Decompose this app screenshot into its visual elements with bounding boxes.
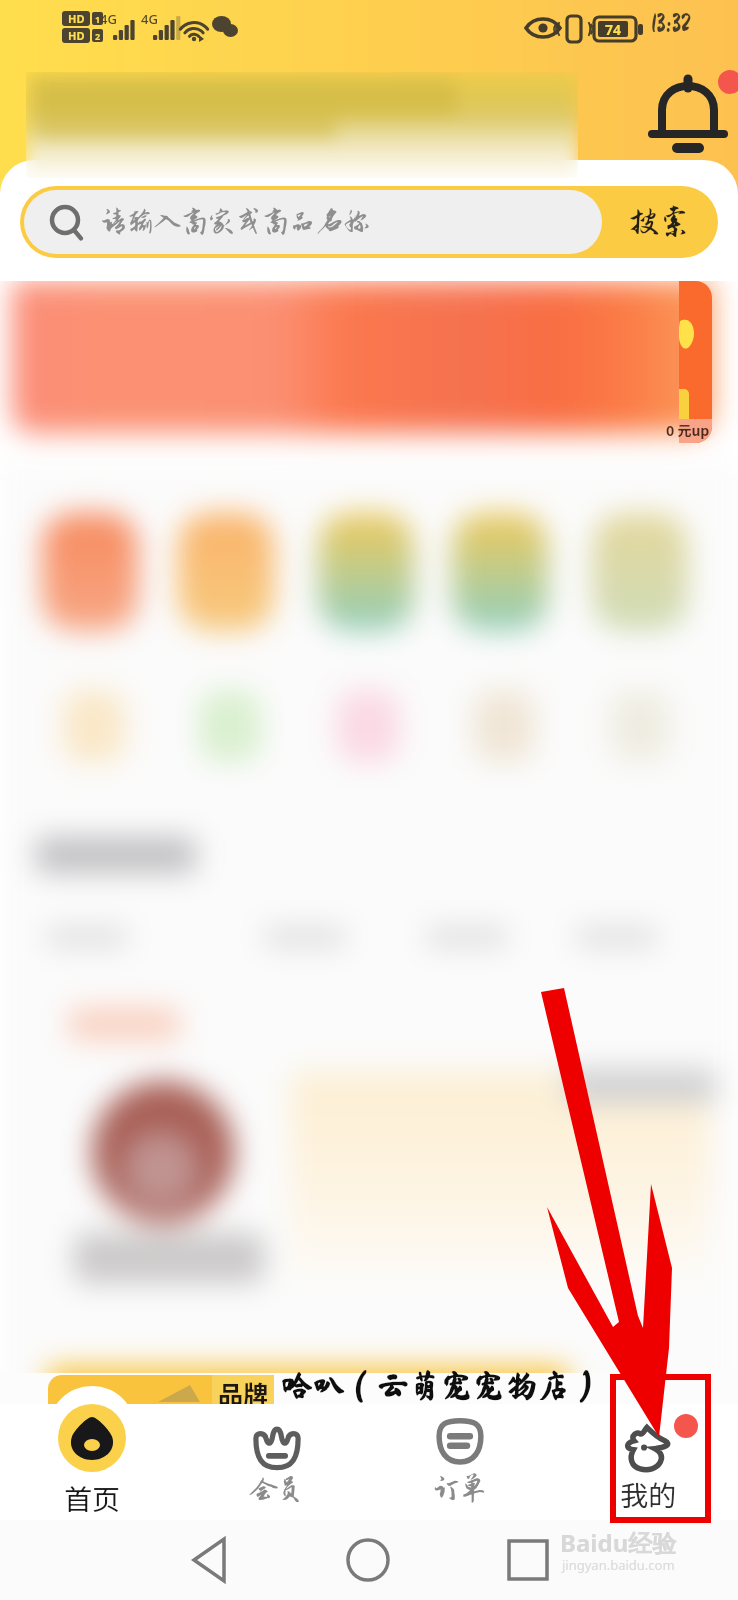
staticText: 请输入商家或商品名称 [100, 207, 370, 237]
staticText: 我的 [620, 1474, 677, 1515]
staticText: 1 [95, 13, 101, 25]
button[interactable] [63, 690, 125, 762]
button[interactable] [609, 690, 671, 762]
button[interactable] [318, 513, 414, 631]
button[interactable] [0, 1404, 738, 1520]
staticText: 首页 [64, 1478, 121, 1519]
button[interactable] [473, 690, 535, 762]
staticText: 会员 [250, 1475, 304, 1505]
button[interactable]: 会员 [215, 1404, 339, 1520]
staticText: 订单 [433, 1474, 487, 1504]
staticText: 0 元up [666, 420, 710, 440]
button[interactable] [337, 690, 399, 762]
button[interactable]: 订单 [398, 1404, 522, 1520]
staticText: HD [68, 11, 85, 26]
staticText: HD [68, 28, 85, 43]
staticText: 74 [605, 20, 622, 39]
button[interactable] [42, 513, 138, 631]
button[interactable]: 首页 [30, 1404, 154, 1520]
staticText: 品牌 [218, 1375, 269, 1405]
button[interactable]: 请输入商家或商品名称 [20, 186, 718, 258]
staticText: Baidu经验 [560, 1526, 677, 1559]
button[interactable] [199, 690, 261, 762]
staticText: 哈叭（云萌宠宠物店） [281, 1370, 601, 1401]
staticText: 搜索 [629, 205, 691, 239]
staticText: 2 [95, 30, 101, 42]
button[interactable]: Notifications [650, 74, 726, 150]
button[interactable]: 我的 [586, 1404, 710, 1520]
staticText: 13:32 [651, 10, 691, 36]
button[interactable] [452, 513, 548, 631]
button[interactable] [178, 513, 274, 631]
staticText: 4G [141, 10, 158, 28]
staticText: 4G [100, 10, 117, 28]
button[interactable] [592, 513, 688, 631]
staticText: jingyan.baidu.com [562, 1556, 675, 1574]
